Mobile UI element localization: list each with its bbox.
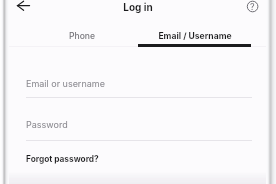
staticText: Password [26,119,68,130]
staticText: Email or username [26,78,105,89]
button[interactable]: Email / Username [138,31,252,41]
button[interactable]: Phone [25,31,139,41]
staticText: ? [250,1,255,12]
staticText: Log in [0,1,276,13]
staticText: Forgot password? [26,154,99,164]
button[interactable]: Forgot password? [26,154,99,164]
button[interactable]: Help [245,0,261,14]
button[interactable]: Back [13,0,33,12]
